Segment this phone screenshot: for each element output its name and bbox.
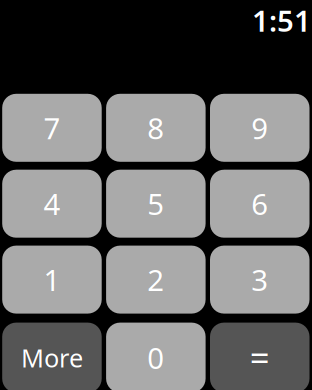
staticText: 9 bbox=[251, 108, 268, 147]
staticText: 7 bbox=[43, 108, 60, 147]
button[interactable]: 4 bbox=[2, 170, 102, 238]
staticText: 1:51 bbox=[252, 1, 311, 40]
staticText: 4 bbox=[43, 184, 60, 223]
button[interactable]: 1 bbox=[2, 246, 102, 314]
button[interactable]: 8 bbox=[106, 94, 206, 162]
button[interactable]: 7 bbox=[2, 94, 102, 162]
staticText: 6 bbox=[251, 184, 268, 223]
button[interactable]: 6 bbox=[210, 170, 309, 238]
button[interactable]: 0 bbox=[106, 323, 206, 390]
staticText: More bbox=[21, 341, 83, 374]
staticText: 5 bbox=[147, 184, 164, 223]
button[interactable]: 9 bbox=[210, 94, 309, 162]
staticText: 3 bbox=[251, 260, 268, 299]
button[interactable]: 3 bbox=[210, 246, 309, 314]
staticText: 2 bbox=[147, 260, 164, 299]
button[interactable]: More bbox=[2, 323, 102, 390]
staticText: 1 bbox=[43, 260, 60, 299]
button[interactable]: 5 bbox=[106, 170, 206, 238]
staticText: 0 bbox=[147, 338, 164, 377]
staticText: 8 bbox=[147, 108, 164, 147]
button[interactable]: Equals bbox=[210, 323, 309, 390]
button[interactable]: 2 bbox=[106, 246, 206, 314]
staticText: = bbox=[250, 335, 270, 381]
